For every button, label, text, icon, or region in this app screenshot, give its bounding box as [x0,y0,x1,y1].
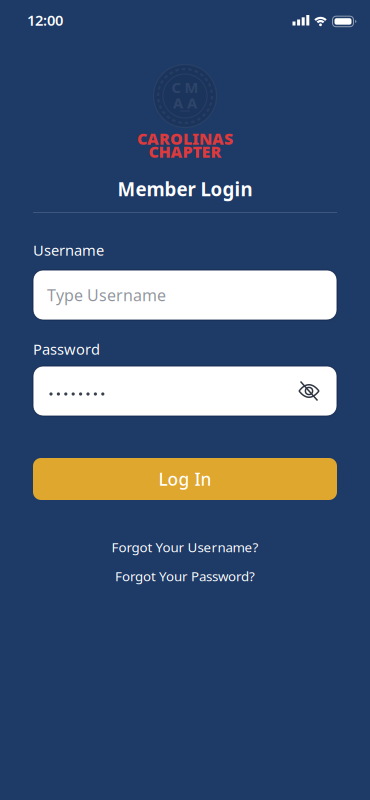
staticText: CHAPTER [148,141,221,162]
staticText: Log In [158,467,211,490]
staticText: 12:00 [27,10,63,30]
staticText: Forgot Your Username? [111,538,258,556]
staticText: Username [33,240,104,260]
button[interactable]: Forgot Your Password? [115,569,255,583]
button[interactable]: Log In [33,458,337,500]
staticText: Type Username [47,284,166,306]
button[interactable] [33,366,337,416]
staticText: A A [173,93,197,112]
staticText: Forgot Your Password? [115,567,255,585]
staticText: Password [33,339,100,359]
staticText: Member Login [117,177,252,201]
button[interactable]: Show Password [298,381,320,401]
button[interactable]: Forgot Your Username? [111,540,258,554]
staticText: CAROLINAS [137,128,233,149]
button[interactable]: Type Username [33,270,337,320]
staticText: C M [171,77,198,97]
